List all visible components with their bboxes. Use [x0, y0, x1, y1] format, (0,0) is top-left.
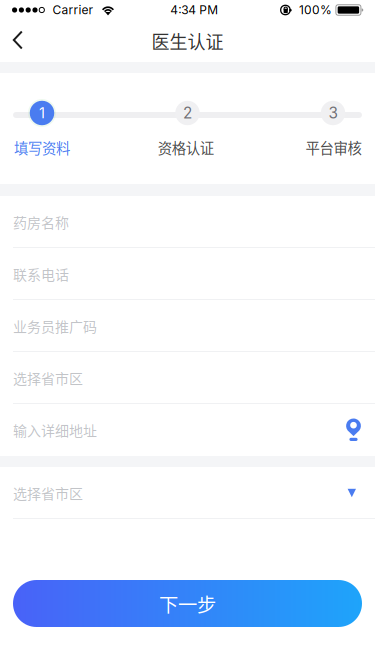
- staticText: 资格认证: [158, 137, 214, 158]
- staticText: 选择省市区: [13, 483, 83, 503]
- staticText: 药房名称: [13, 212, 69, 232]
- button[interactable]: 选择省市区: [0, 467, 375, 519]
- staticText: 3: [328, 104, 337, 122]
- button[interactable]: 下一步: [0, 580, 375, 627]
- staticText: 医生认证: [151, 28, 223, 54]
- button[interactable]: 药房名称: [0, 196, 375, 248]
- staticText: 1: [39, 104, 45, 122]
- staticText: 选择省市区: [13, 368, 83, 388]
- staticText: 输入详细地址: [13, 420, 97, 440]
- button[interactable]: 业务员推广码: [0, 300, 375, 352]
- staticText: 填写资料: [14, 137, 70, 158]
- staticText: 业务员推广码: [13, 316, 97, 336]
- staticText: 平台审核: [305, 137, 361, 158]
- staticText: 100%: [299, 3, 332, 17]
- staticText: Carrier: [52, 3, 93, 17]
- staticText: 联系电话: [13, 264, 69, 284]
- staticText: 下一步: [159, 589, 216, 617]
- button[interactable]: Back: [0, 20, 43, 62]
- staticText: 4:34 PM: [170, 3, 218, 17]
- staticText: 2: [183, 104, 192, 122]
- button[interactable]: 输入详细地址: [0, 404, 375, 456]
- button[interactable]: 选择省市区: [0, 352, 375, 404]
- button[interactable]: 联系电话: [0, 248, 375, 300]
